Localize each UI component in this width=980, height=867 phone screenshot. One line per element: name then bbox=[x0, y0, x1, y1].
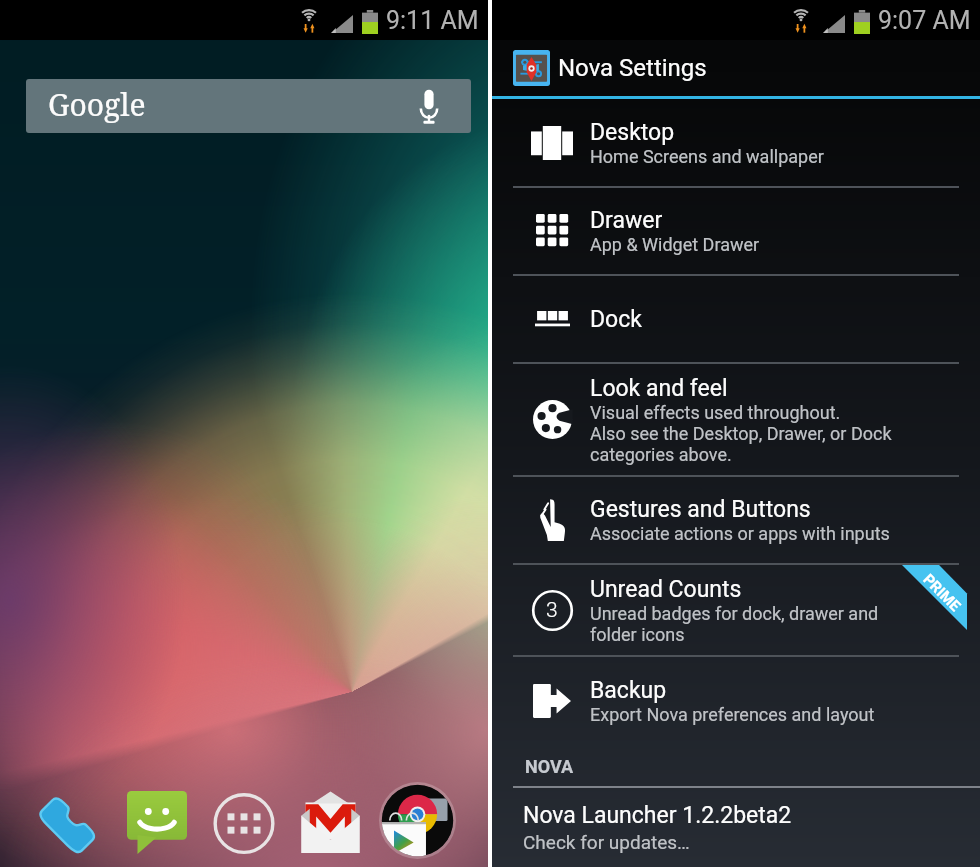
button[interactable]: Gmail bbox=[288, 779, 373, 865]
button[interactable]: Messaging bbox=[115, 779, 199, 866]
staticText: Backup bbox=[590, 677, 667, 704]
staticText: Drawer bbox=[590, 207, 663, 234]
button[interactable]: Look and feel bbox=[492, 364, 980, 475]
staticText: PRIME bbox=[919, 570, 965, 616]
button[interactable]: Folder bbox=[367, 770, 468, 867]
staticText: Unread badges for dock, drawer and bbox=[590, 603, 879, 624]
button[interactable]: Nova Settings bbox=[492, 40, 980, 96]
staticText: Google bbox=[48, 84, 146, 125]
button[interactable]: Drawer bbox=[492, 188, 980, 274]
staticText: 9:07 AM bbox=[878, 6, 971, 35]
staticText: Export Nova preferences and layout bbox=[590, 704, 875, 725]
staticText: Look and feel bbox=[590, 375, 728, 402]
staticText: Desktop bbox=[590, 119, 675, 146]
staticText: Nova Launcher 1.2.2beta2 bbox=[523, 802, 792, 829]
button[interactable]: Dock bbox=[492, 276, 980, 362]
staticText: 3 bbox=[546, 598, 558, 623]
staticText: Unread Counts bbox=[590, 576, 742, 603]
staticText: Dock bbox=[590, 306, 642, 333]
staticText: Home Screens and wallpaper bbox=[590, 146, 824, 167]
staticText: Nova Settings bbox=[558, 54, 707, 82]
button[interactable]: Desktop bbox=[492, 99, 980, 186]
staticText: Check for updates… bbox=[523, 831, 690, 853]
button[interactable]: Nova Launcher 1.2.2beta2 bbox=[492, 788, 980, 853]
button[interactable]: 3 bbox=[492, 565, 980, 655]
staticText: 9:11 AM bbox=[386, 6, 479, 35]
button[interactable]: Backup bbox=[492, 657, 980, 745]
staticText: folder icons bbox=[590, 624, 685, 645]
staticText: Also see the Desktop, Drawer, or Dock bbox=[590, 423, 892, 444]
staticText: App & Widget Drawer bbox=[590, 234, 760, 255]
staticText: NOVA bbox=[525, 756, 574, 777]
button[interactable]: Gestures and Buttons bbox=[492, 477, 980, 563]
button[interactable]: Google search bbox=[26, 79, 471, 133]
staticText: Visual effects used throughout. bbox=[590, 402, 841, 423]
button[interactable]: Phone bbox=[29, 780, 112, 864]
button[interactable]: Apps bbox=[201, 780, 287, 867]
staticText: Gestures and Buttons bbox=[590, 496, 811, 523]
staticText: categories above. bbox=[590, 444, 732, 465]
staticText: Associate actions or apps with inputs bbox=[590, 523, 890, 544]
